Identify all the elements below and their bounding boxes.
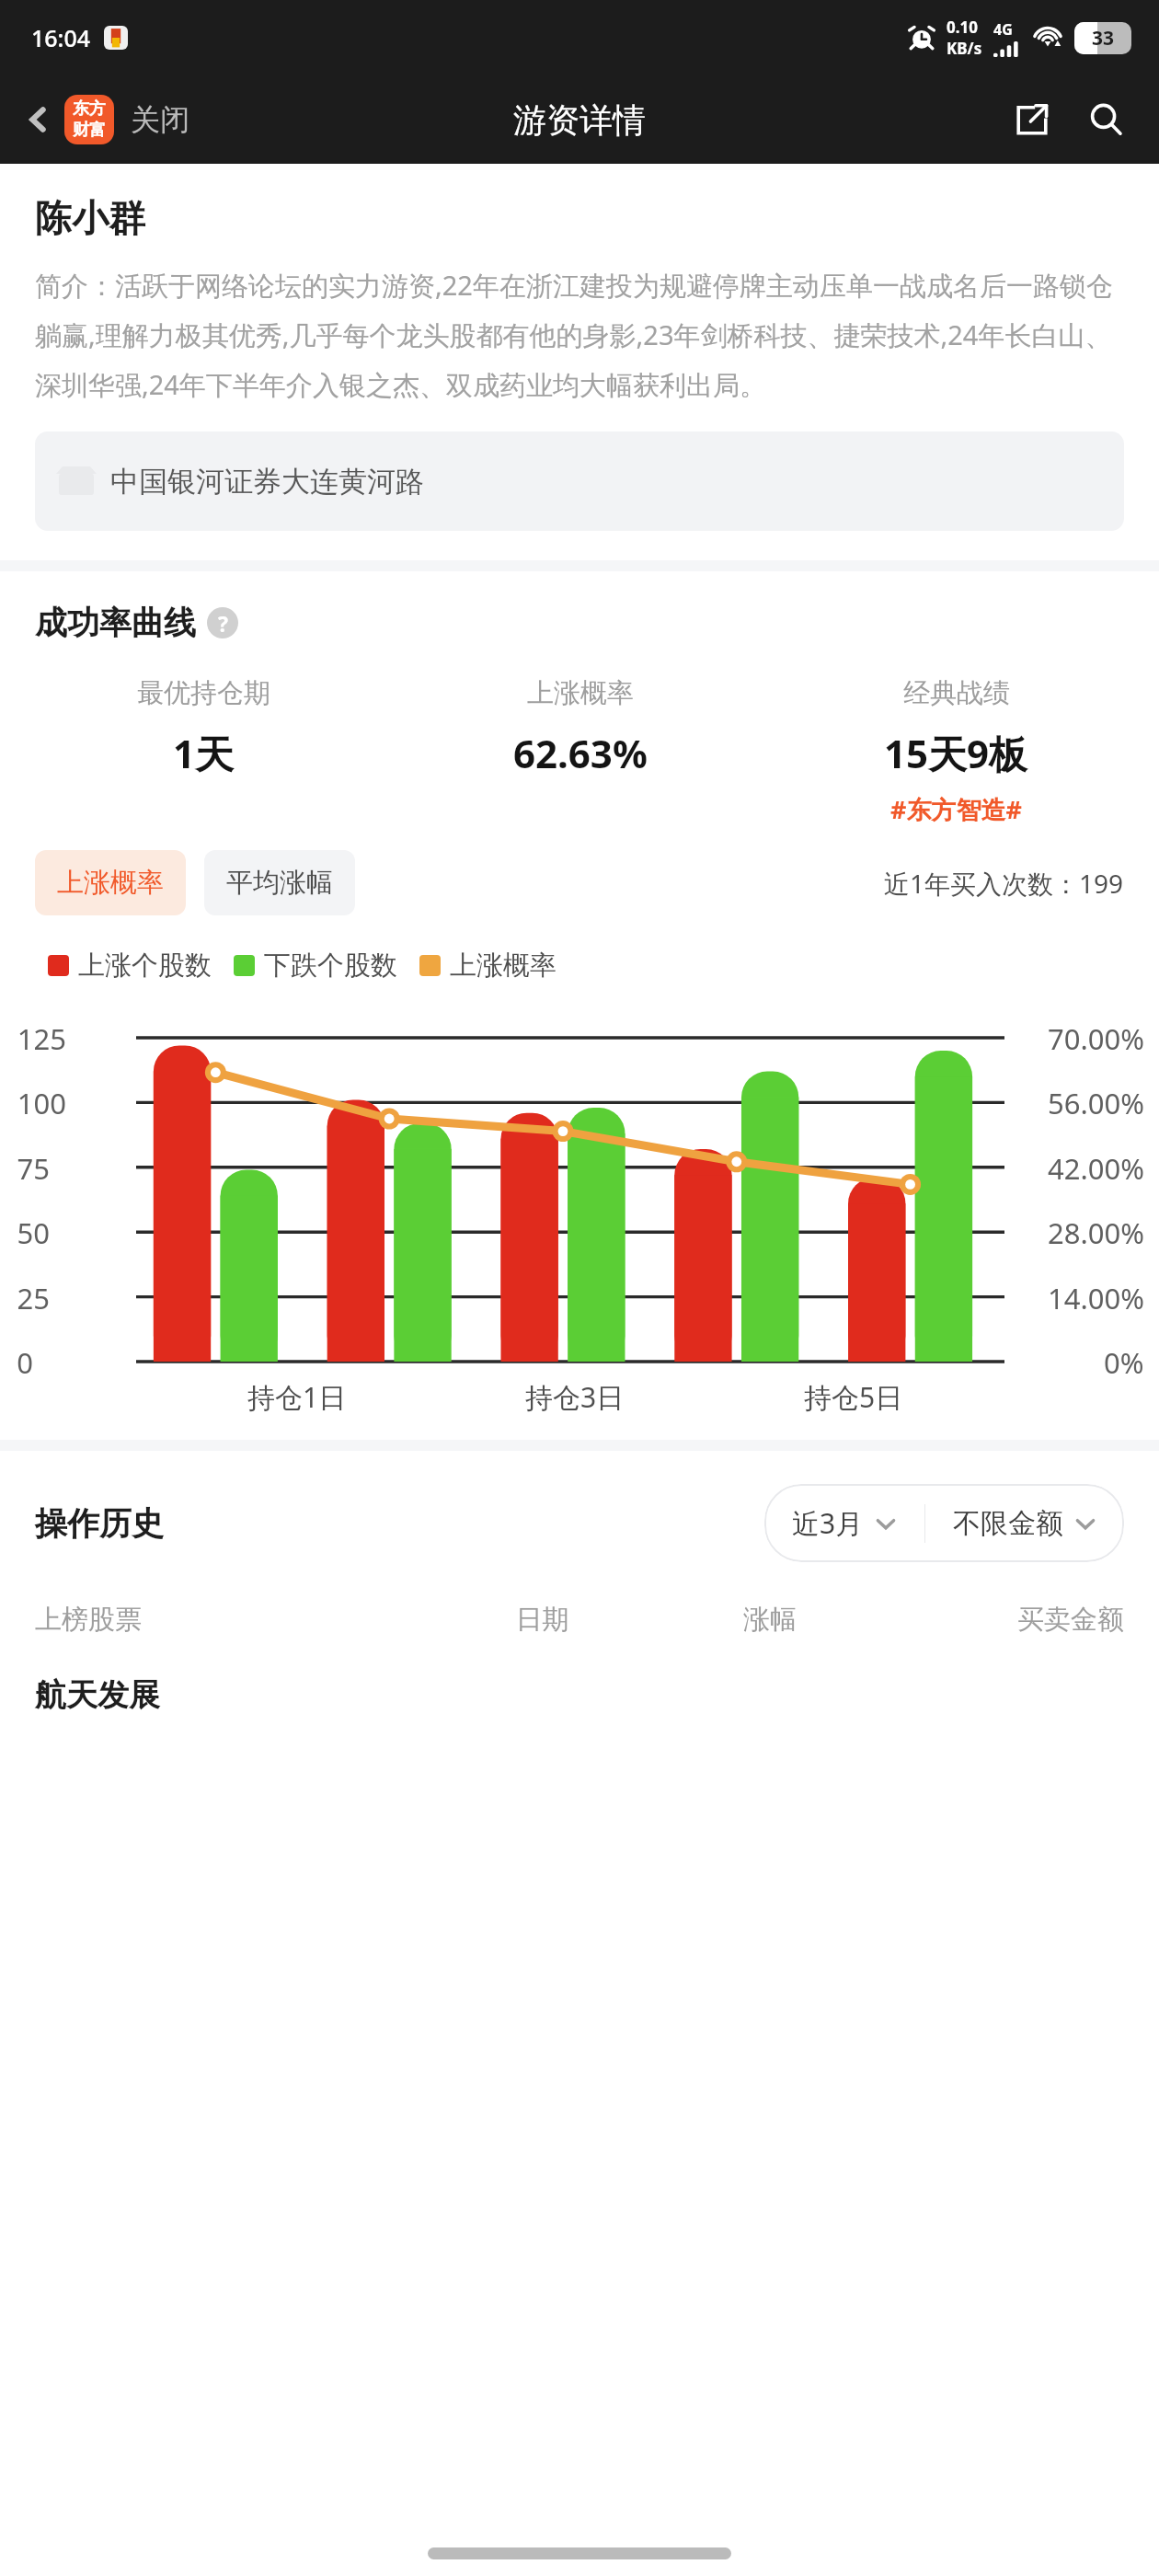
button[interactable]: 中国银河证券大连黄河路 — [35, 431, 1124, 531]
staticText: KB/s — [947, 38, 982, 59]
staticText: 不限金额 — [953, 1506, 1063, 1541]
staticText: 下跌个股数 — [264, 949, 397, 983]
button[interactable]: 搜索 — [1078, 92, 1133, 147]
staticText: 陈小群 — [35, 195, 145, 241]
button[interactable]: 上涨概率 — [392, 676, 768, 822]
other: 返回 — [17, 98, 59, 141]
staticText: 50 — [17, 1213, 50, 1252]
button[interactable]: 不限金额 — [925, 1486, 1124, 1561]
button[interactable]: 上涨概率 — [35, 850, 186, 915]
staticText: 1天 — [173, 727, 235, 779]
staticText: 75 — [17, 1149, 50, 1188]
staticText: 持仓5日 — [804, 1378, 903, 1416]
staticText: 100 — [17, 1084, 66, 1122]
staticText: 关闭 — [131, 101, 189, 138]
button[interactable]: 最优持仓期 — [15, 676, 392, 822]
staticText: 近1年买入次数：199 — [884, 866, 1124, 901]
staticText: 0 — [17, 1343, 33, 1382]
button[interactable]: 返回 — [17, 95, 189, 144]
button[interactable]: 航天发展 — [35, 1675, 1124, 1715]
staticText: 经典战绩 — [903, 676, 1010, 710]
button[interactable]: 说明 — [207, 607, 238, 638]
button[interactable]: 经典战绩 — [768, 676, 1144, 826]
staticText: 0.10 — [947, 17, 978, 38]
staticText: 70.00% — [1048, 1019, 1144, 1058]
button[interactable]: 平均涨幅 — [204, 850, 355, 915]
staticText: 持仓3日 — [525, 1378, 625, 1416]
staticText: 16:04 — [31, 22, 91, 53]
staticText: 买卖金额 — [871, 1603, 1124, 1637]
staticText: ? — [218, 609, 228, 638]
staticText: 游资详情 — [513, 99, 646, 141]
staticText: 航天发展 — [35, 1675, 160, 1715]
staticText: 东方 — [73, 98, 106, 120]
staticText: 财富 — [73, 120, 106, 141]
staticText: 28.00% — [1048, 1213, 1144, 1252]
staticText: 涨幅 — [669, 1603, 871, 1637]
staticText: 15天9板 — [884, 727, 1028, 779]
staticText: 中国银河证券大连黄河路 — [110, 464, 424, 500]
staticText: 持仓1日 — [247, 1378, 347, 1416]
staticText: 上榜股票 — [35, 1603, 416, 1637]
staticText: #东方智造# — [890, 792, 1022, 826]
staticText: 4G — [993, 19, 1013, 40]
staticText: 最优持仓期 — [137, 676, 270, 710]
staticText: 简介：活跃于网络论坛的实力游资,22年在浙江建投为规避停牌主动压单一战成名后一路… — [35, 267, 1124, 402]
staticText: 25 — [17, 1279, 50, 1317]
staticText: 33 — [1092, 25, 1115, 52]
staticText: 成功率曲线 — [35, 603, 196, 643]
staticText: 平均涨幅 — [226, 866, 333, 900]
staticText: 上涨概率 — [450, 949, 557, 983]
staticText: 上涨个股数 — [78, 949, 212, 983]
staticText: 125 — [17, 1019, 66, 1058]
button[interactable]: 近3月 — [764, 1484, 924, 1562]
staticText: 上涨概率 — [527, 676, 634, 710]
staticText: 近3月 — [792, 1504, 864, 1542]
staticText: 0% — [1104, 1343, 1144, 1382]
staticText: 日期 — [416, 1603, 669, 1637]
staticText: 62.63% — [513, 727, 648, 779]
staticText: 56.00% — [1048, 1084, 1144, 1122]
staticText: 14.00% — [1048, 1279, 1144, 1317]
staticText: 上涨概率 — [57, 866, 164, 900]
button[interactable]: 分享 — [1004, 92, 1060, 147]
staticText: 操作历史 — [35, 1503, 164, 1544]
staticText: 42.00% — [1048, 1149, 1144, 1188]
